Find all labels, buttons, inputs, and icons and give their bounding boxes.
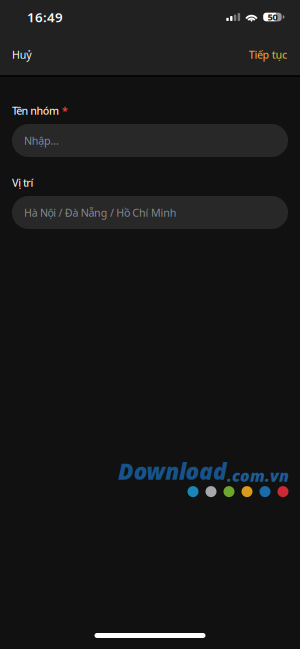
- staticText: Tên nhóm: [12, 103, 59, 118]
- button[interactable]: Tiếp tục: [235, 35, 300, 74]
- button[interactable]: Hà Nội / Đà Nẵng / Hồ Chí Minh: [12, 196, 288, 229]
- staticText: *: [62, 103, 68, 118]
- staticText: 16:49: [27, 8, 63, 26]
- staticText: Hà Nội / Đà Nẵng / Hồ Chí Minh: [24, 205, 177, 220]
- staticText: Nhập...: [24, 133, 59, 148]
- button[interactable]: Huỷ: [0, 35, 43, 74]
- staticText: 50: [267, 11, 277, 23]
- button[interactable]: Nhập...: [12, 124, 288, 157]
- staticText: Tiếp tục: [249, 47, 287, 62]
- staticText: Vị trí: [12, 175, 33, 190]
- staticText: Huỷ: [12, 47, 31, 62]
- staticText: .com.vn: [227, 465, 289, 486]
- staticText: Download: [118, 456, 227, 486]
